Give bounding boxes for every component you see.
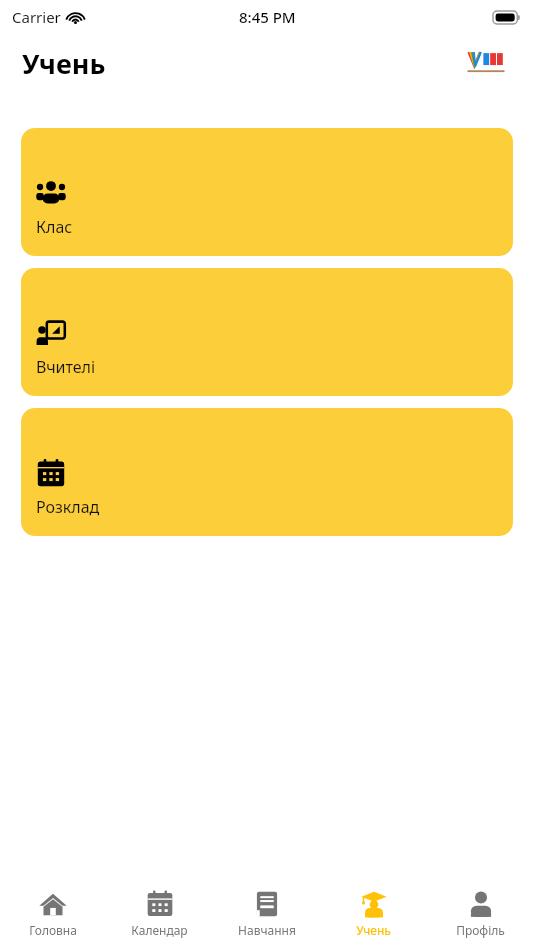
staticText: Учень [356,922,391,938]
staticText: Профіль [456,922,505,938]
staticText: 8:45 PM [239,7,296,27]
button[interactable]: Вчителі [21,268,513,396]
staticText: Навчання [238,922,296,938]
button[interactable]: Профіль [427,878,534,950]
staticText: Carrier [12,7,61,27]
staticText: Календар [131,922,188,938]
button[interactable]: Клас [21,128,513,256]
staticText: Розклад [36,496,100,518]
staticText: Учень [22,45,106,82]
button[interactable]: Навчання [213,878,320,950]
staticText: Клас [36,216,73,238]
button[interactable]: Розклад [21,408,513,536]
button[interactable]: Головна [0,878,106,950]
staticText: Вчителі [36,356,96,378]
staticText: Головна [29,922,77,938]
button[interactable]: Учень [320,878,427,950]
button[interactable]: Календар [106,878,213,950]
